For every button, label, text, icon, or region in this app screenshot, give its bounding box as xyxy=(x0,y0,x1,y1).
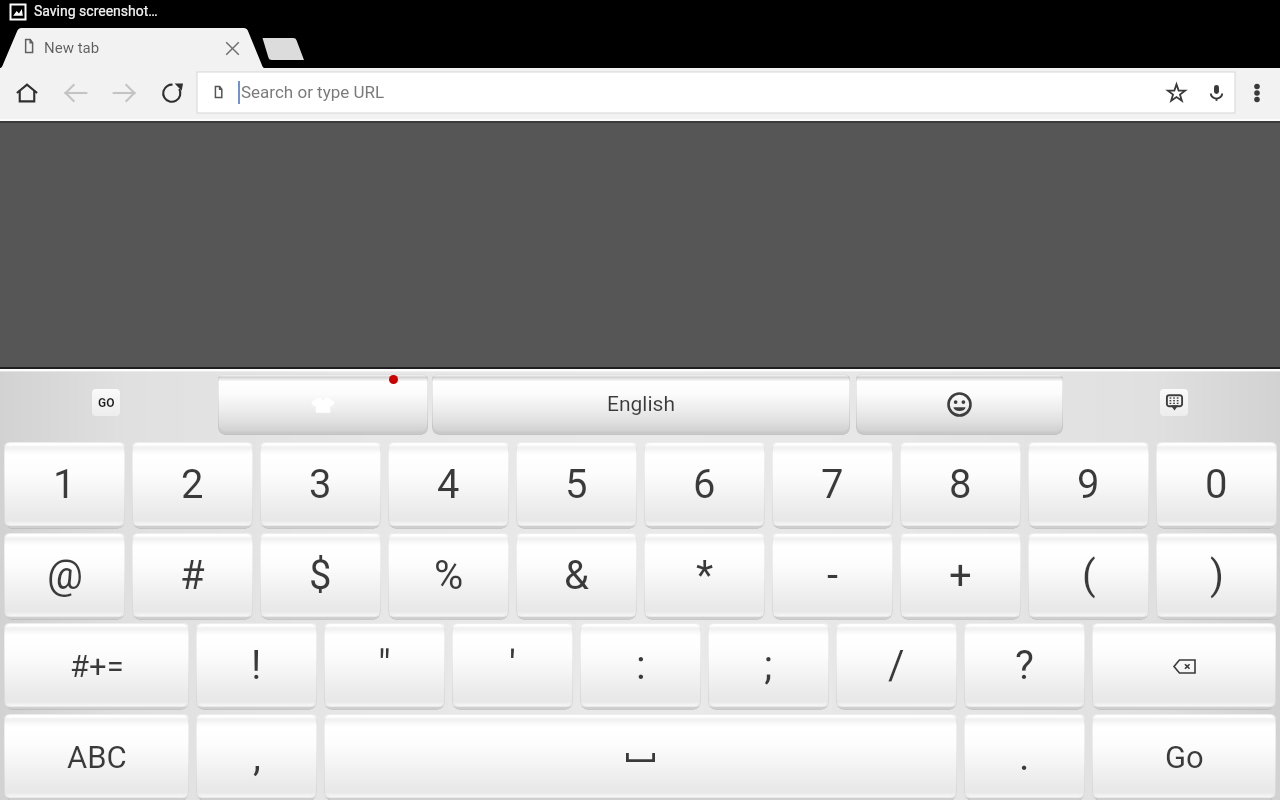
staticText: 7 xyxy=(821,461,844,508)
staticText: " xyxy=(378,642,391,689)
button[interactable]: Forward xyxy=(107,76,141,110)
staticText: English xyxy=(607,392,675,417)
staticText: New tab xyxy=(44,39,100,57)
staticText: ; xyxy=(764,642,773,689)
button[interactable]: 9 xyxy=(1028,442,1149,529)
staticText: 6 xyxy=(693,461,716,508)
button[interactable]: " xyxy=(324,623,445,710)
staticText: ) xyxy=(1210,552,1224,599)
staticText: , xyxy=(253,733,261,780)
staticText: # xyxy=(180,552,205,599)
staticText: * xyxy=(696,552,714,599)
staticText: % xyxy=(434,552,464,599)
button[interactable]: . xyxy=(964,714,1085,800)
button[interactable]: / xyxy=(836,623,957,710)
button[interactable]: , xyxy=(196,714,317,800)
staticText: + xyxy=(949,552,972,599)
staticText: 4 xyxy=(437,461,460,508)
staticText: 2 xyxy=(181,461,204,508)
button[interactable]: : xyxy=(580,623,701,710)
staticText: 3 xyxy=(309,461,332,508)
button[interactable]: 1 xyxy=(4,442,125,529)
staticText: & xyxy=(564,552,589,599)
button[interactable]: Go xyxy=(1092,714,1276,800)
button[interactable]: - xyxy=(772,533,893,620)
button[interactable]: 3 xyxy=(260,442,381,529)
button[interactable]: More options xyxy=(1241,77,1273,109)
button[interactable]: ) xyxy=(1156,533,1277,620)
staticText: #+= xyxy=(70,648,124,684)
button[interactable] xyxy=(8,28,213,68)
button[interactable]: * xyxy=(644,533,765,620)
staticText: @ xyxy=(47,552,83,599)
button[interactable]: Backspace xyxy=(1092,623,1276,710)
staticText: Saving screenshot… xyxy=(34,3,158,19)
button[interactable]: @ xyxy=(4,533,125,620)
button[interactable]: % xyxy=(388,533,509,620)
button[interactable]: Hide keyboard xyxy=(1160,389,1188,416)
button[interactable]: + xyxy=(900,533,1021,620)
staticText: GO xyxy=(98,396,115,410)
button[interactable]: # xyxy=(132,533,253,620)
button[interactable]: English xyxy=(432,374,850,435)
button[interactable]: Themes xyxy=(218,374,428,435)
staticText: ! xyxy=(251,642,262,689)
button[interactable]: 5 xyxy=(516,442,637,529)
button[interactable]: 4 xyxy=(388,442,509,529)
staticText: - xyxy=(827,552,839,599)
staticText: 1 xyxy=(53,461,76,508)
button[interactable]: ' xyxy=(452,623,573,710)
staticText: Go xyxy=(1165,739,1204,775)
button[interactable]: Home xyxy=(10,76,44,110)
button[interactable]: Space xyxy=(324,714,957,800)
staticText: 0 xyxy=(1205,461,1228,508)
button[interactable]: Reload xyxy=(155,76,189,110)
button[interactable]: ( xyxy=(1028,533,1149,620)
staticText: Search or type URL xyxy=(241,82,385,102)
button[interactable]: Search or type URL xyxy=(197,72,1235,113)
button[interactable]: ? xyxy=(964,623,1085,710)
button[interactable]: GO xyxy=(92,389,120,416)
button[interactable]: $ xyxy=(260,533,381,620)
button[interactable]: ABC xyxy=(4,714,189,800)
button[interactable]: Emoji xyxy=(856,374,1063,435)
button[interactable]: ! xyxy=(196,623,317,710)
button[interactable]: ; xyxy=(708,623,829,710)
staticText: ( xyxy=(1082,552,1096,599)
staticText: 5 xyxy=(565,461,588,508)
button[interactable]: #+= xyxy=(4,623,189,710)
button[interactable]: & xyxy=(516,533,637,620)
button[interactable]: Bookmark xyxy=(1161,77,1191,107)
staticText: ? xyxy=(1015,642,1034,689)
button[interactable]: 6 xyxy=(644,442,765,529)
staticText: 8 xyxy=(949,461,972,508)
staticText: . xyxy=(1019,733,1030,780)
staticText: $ xyxy=(309,552,332,599)
button[interactable]: 2 xyxy=(132,442,253,529)
staticText: / xyxy=(888,642,905,689)
button[interactable]: Back xyxy=(59,76,93,110)
staticText: : xyxy=(636,642,646,689)
staticText: 9 xyxy=(1077,461,1100,508)
staticText: ' xyxy=(509,642,516,689)
staticText: ABC xyxy=(67,739,127,775)
button[interactable]: 8 xyxy=(900,442,1021,529)
button[interactable]: 7 xyxy=(772,442,893,529)
button[interactable]: Voice search xyxy=(1201,77,1231,107)
button[interactable]: Close tab xyxy=(216,34,248,62)
button[interactable]: 0 xyxy=(1156,442,1277,529)
